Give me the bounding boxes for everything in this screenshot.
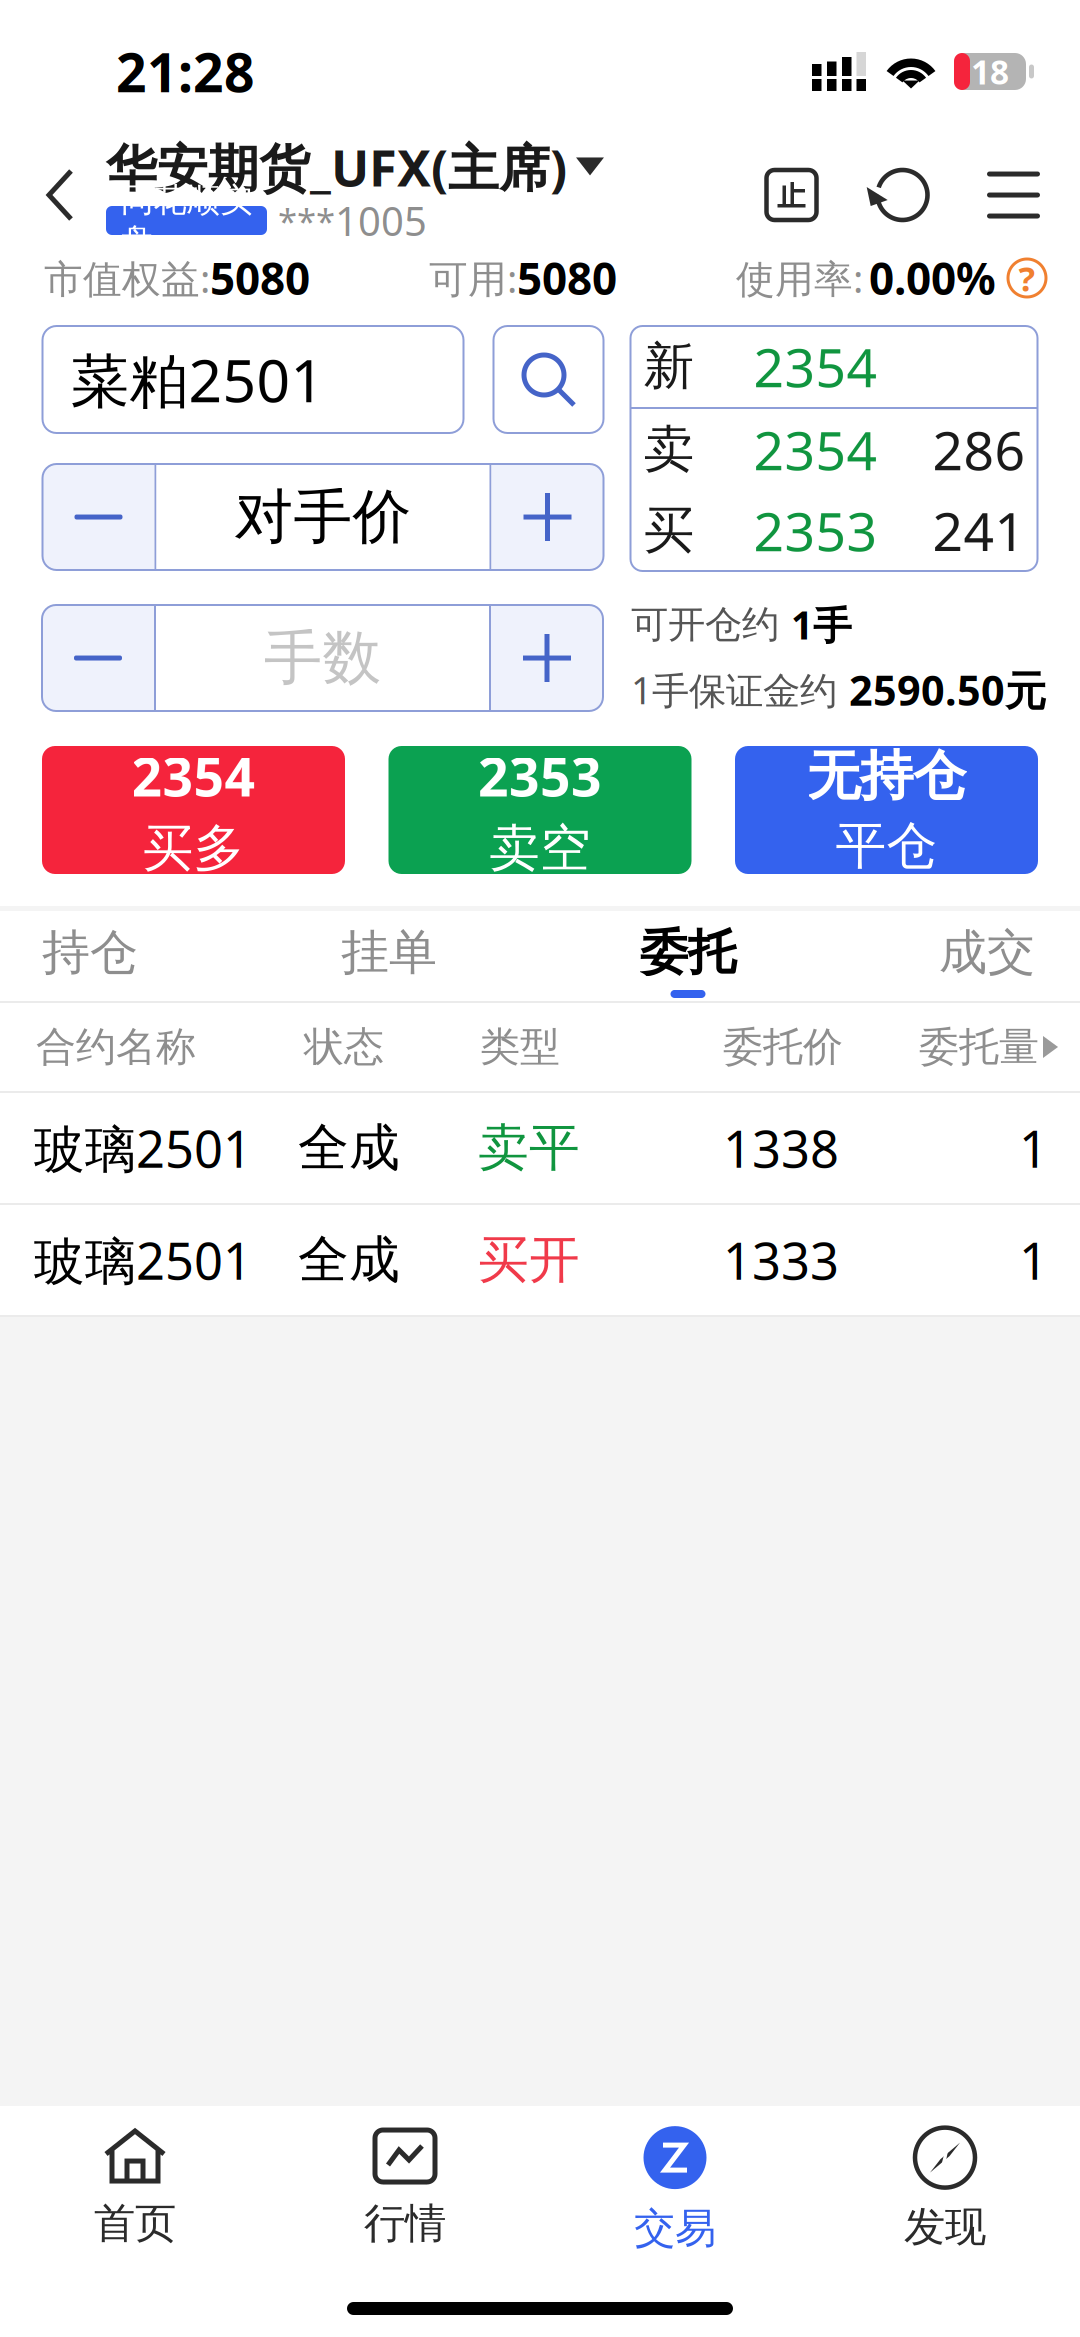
staticText: 同花顺实盘	[120, 180, 252, 261]
button[interactable]: 菜粕2501	[42, 326, 463, 433]
staticText: 平仓	[835, 815, 937, 877]
staticText: 2354	[753, 331, 877, 402]
staticText: 2590.50元	[849, 662, 1046, 717]
staticText: 首页	[94, 2198, 176, 2249]
staticText: 买	[643, 499, 694, 562]
staticText: 卖平	[478, 1117, 580, 1179]
staticText: 可用:	[429, 252, 517, 304]
staticText: 5080	[210, 249, 310, 307]
button[interactable]: 委托	[640, 911, 736, 1001]
staticText: 状态	[304, 1022, 384, 1071]
staticText: 玻璃2501	[34, 1226, 252, 1294]
staticText: 卖	[643, 418, 694, 481]
button[interactable]: 无持仓	[735, 746, 1038, 874]
button[interactable]: 止盈止损	[736, 143, 847, 247]
staticText: 新	[643, 335, 694, 398]
staticText: 2354	[753, 414, 877, 485]
button[interactable]: 2353	[388, 746, 691, 874]
staticText: 持仓	[42, 923, 138, 982]
staticText: 286	[932, 414, 1025, 485]
staticText: 挂单	[341, 923, 437, 982]
staticText: 241	[932, 495, 1025, 566]
button[interactable]: 减少	[42, 464, 154, 570]
staticText: 玻璃2501	[34, 1114, 252, 1182]
staticText: 交易	[634, 2203, 716, 2254]
button[interactable]: 减少	[42, 605, 154, 711]
staticText: 买开	[478, 1229, 580, 1291]
staticText: 行情	[364, 2198, 446, 2249]
button[interactable]: 挂单	[341, 911, 437, 1001]
button[interactable]: 玻璃2501	[0, 1093, 1080, 1203]
staticText: 可开仓约	[631, 602, 779, 647]
staticText: 2354	[131, 740, 255, 811]
button[interactable]: 搜索	[493, 326, 603, 433]
button[interactable]: 玻璃2501	[0, 1205, 1080, 1315]
staticText: 1手	[791, 599, 852, 650]
staticText: 华安期货_UFX(主席)	[106, 133, 567, 201]
staticText: 委托价	[723, 1022, 843, 1071]
staticText: 2353	[753, 495, 877, 566]
staticText: 发现	[904, 2202, 986, 2252]
button[interactable]: 交易	[540, 2106, 810, 2260]
staticText: 买多	[142, 817, 244, 879]
staticText: 市值权益:	[44, 252, 210, 304]
staticText: 手数	[263, 622, 381, 694]
staticText: 1手保证金约	[631, 665, 837, 714]
staticText: 全成	[298, 1117, 400, 1179]
button[interactable]: 首页	[0, 2106, 270, 2260]
button[interactable]: 增加	[491, 605, 603, 711]
button[interactable]: 发现	[810, 2106, 1080, 2260]
staticText: ***	[278, 197, 335, 243]
staticText: 合约名称	[36, 1022, 196, 1071]
staticText: 2353	[478, 740, 602, 811]
staticText: 1	[1019, 1114, 1048, 1182]
button[interactable]: 行情	[270, 2106, 540, 2260]
staticText: ?	[1018, 255, 1035, 301]
staticText: 卖空	[489, 817, 591, 879]
button[interactable]: 菜单	[958, 143, 1069, 247]
staticText: 委托	[640, 923, 736, 982]
staticText: 1338	[723, 1114, 839, 1182]
button[interactable]: 增加	[491, 464, 603, 570]
staticText: 对手价	[234, 481, 411, 553]
staticText: 类型	[480, 1022, 560, 1071]
staticText: 委托量	[919, 1022, 1039, 1071]
staticText: 全成	[298, 1229, 400, 1291]
button[interactable]: 返回	[0, 143, 106, 247]
staticText: 0.00%	[869, 249, 996, 307]
staticText: 菜粕2501	[70, 340, 324, 418]
staticText: 成交	[939, 923, 1035, 982]
staticText: 使用率:	[736, 252, 863, 304]
staticText: 21:28	[116, 36, 255, 107]
staticText: 1005	[335, 194, 427, 247]
staticText: 5080	[517, 249, 617, 307]
staticText: 1333	[723, 1226, 839, 1294]
button[interactable]: 持仓	[42, 911, 138, 1001]
button[interactable]: 刷新	[847, 143, 958, 247]
staticText: 无持仓	[807, 743, 966, 809]
button[interactable]: 成交	[939, 911, 1035, 1001]
staticText: 1	[1019, 1226, 1048, 1294]
staticText: 18	[971, 49, 1009, 94]
button[interactable]: 2354	[42, 746, 345, 874]
